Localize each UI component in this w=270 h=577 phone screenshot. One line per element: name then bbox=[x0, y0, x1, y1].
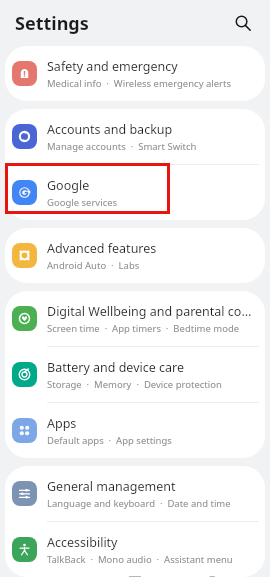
button[interactable]: Battery and device care bbox=[5, 347, 265, 402]
staticText: Default apps · App settings bbox=[47, 434, 172, 447]
staticText: Safety and emergency bbox=[47, 58, 178, 75]
staticText: Screen time · App timers · Bedtime mode bbox=[47, 322, 240, 335]
staticText: Google bbox=[47, 177, 90, 194]
staticText: Battery and device care bbox=[47, 359, 185, 376]
button[interactable]: Apps bbox=[5, 403, 265, 458]
staticText: Google services bbox=[47, 196, 118, 209]
button[interactable]: Advanced features bbox=[5, 228, 265, 283]
button[interactable]: Digital Wellbeing and parental controls bbox=[5, 291, 265, 346]
button[interactable]: Google bbox=[5, 165, 265, 220]
button[interactable]: Search bbox=[227, 7, 259, 39]
button[interactable]: General management bbox=[5, 466, 265, 521]
staticText: Storage · Memory · Device protection bbox=[47, 378, 222, 391]
staticText: Medical info · Wireless emergency alerts bbox=[47, 77, 232, 90]
staticText: Accessibility bbox=[47, 534, 118, 551]
staticText: Apps bbox=[47, 415, 77, 432]
button[interactable]: Accessibility bbox=[5, 522, 265, 577]
staticText: General management bbox=[47, 478, 176, 495]
staticText: Manage accounts · Smart Switch bbox=[47, 140, 197, 153]
staticText: Digital Wellbeing and parental controls bbox=[47, 303, 257, 320]
staticText: Advanced features bbox=[47, 240, 157, 257]
button[interactable]: Safety and emergency bbox=[5, 46, 265, 101]
staticText: TalkBack · Mono audio · Assistant menu bbox=[47, 553, 233, 566]
staticText: Accounts and backup bbox=[47, 121, 173, 138]
button[interactable]: Accounts and backup bbox=[5, 109, 265, 164]
staticText: Android Auto · Labs bbox=[47, 259, 140, 272]
staticText: Language and keyboard · Date and time bbox=[47, 497, 231, 510]
staticText: Settings bbox=[15, 11, 89, 36]
